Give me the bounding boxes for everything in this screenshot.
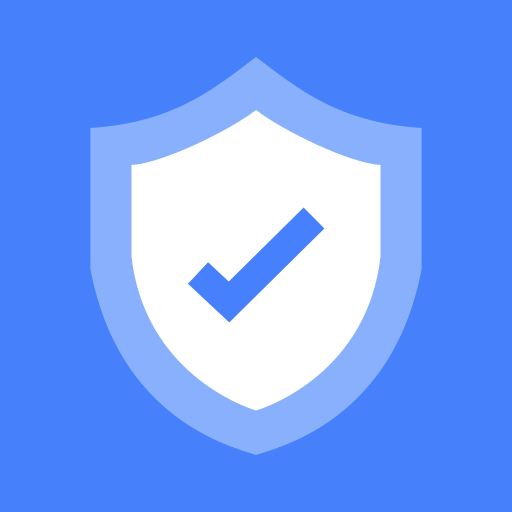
button[interactable]: Protected xyxy=(0,0,512,512)
